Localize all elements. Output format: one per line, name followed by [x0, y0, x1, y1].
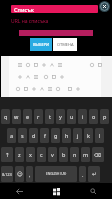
staticText: ВЫБЕРИ: [33, 42, 50, 47]
button[interactable]: ↑: [1, 147, 13, 162]
staticText: Списък: [14, 6, 34, 13]
staticText: c: [40, 151, 43, 158]
button[interactable]: tool: [31, 60, 40, 69]
button[interactable]: Search: [75, 183, 112, 199]
button[interactable]: b: [59, 147, 68, 162]
button[interactable]: tool: [39, 60, 48, 69]
button[interactable]: ☺: [15, 166, 24, 182]
button[interactable]: Close: [99, 1, 110, 12]
button[interactable]: k: [84, 128, 93, 143]
button[interactable]: q: [1, 109, 10, 124]
button[interactable]: o: [89, 109, 98, 124]
staticText: z: [18, 151, 21, 158]
staticText: ↵: [92, 171, 97, 177]
button[interactable]: ВЫБЕРИ: [30, 38, 52, 51]
button[interactable]: m: [81, 147, 90, 162]
staticText: ☺: [17, 171, 23, 177]
staticText: j: [77, 132, 79, 139]
staticText: d: [32, 132, 36, 139]
staticText: a: [10, 132, 14, 139]
staticText: s: [21, 132, 24, 139]
button[interactable]: s: [18, 128, 27, 143]
staticText: ↑: [5, 152, 10, 158]
button[interactable]: .: [79, 166, 86, 182]
button[interactable]: tool: [21, 84, 30, 93]
button[interactable]: r: [34, 109, 43, 124]
staticText: ,: [29, 171, 31, 178]
staticText: p: [103, 113, 107, 120]
button[interactable]: tool: [13, 84, 22, 93]
button[interactable]: n: [70, 147, 79, 162]
button[interactable]: tool: [15, 72, 24, 81]
staticText: l: [99, 132, 101, 139]
button[interactable]: tool: [23, 72, 32, 81]
button[interactable]: w: [12, 109, 21, 124]
button[interactable]: x: [26, 147, 35, 162]
staticText: o: [92, 113, 96, 120]
button[interactable]: h: [62, 128, 71, 143]
button[interactable]: tool: [73, 84, 82, 93]
staticText: ⌫: [94, 152, 102, 158]
button[interactable]: ОТМЕНА: [53, 38, 77, 51]
staticText: y: [59, 113, 62, 120]
button[interactable]: tool: [41, 72, 50, 81]
button[interactable]: tool: [47, 60, 56, 69]
button[interactable]: tool: [53, 84, 62, 93]
button[interactable]: tool: [31, 72, 40, 81]
button[interactable]: tool: [15, 60, 24, 69]
button[interactable]: tool: [45, 84, 54, 93]
staticText: i: [82, 113, 84, 120]
button[interactable]: tool: [57, 72, 66, 81]
button[interactable]: d: [29, 128, 38, 143]
button[interactable]: ENGLISH (US): [35, 166, 77, 182]
staticText: r: [37, 113, 40, 120]
staticText: URL на списъка: [11, 18, 49, 25]
staticText: m: [83, 151, 89, 158]
staticText: &123: [2, 172, 12, 177]
button[interactable]: Back: [0, 183, 38, 199]
staticText: n: [73, 151, 77, 158]
button[interactable]: z: [15, 147, 24, 162]
button[interactable]: f: [40, 128, 49, 143]
button[interactable]: ↵: [88, 166, 100, 182]
button[interactable]: v: [48, 147, 57, 162]
button[interactable]: g: [51, 128, 60, 143]
button[interactable]: j: [73, 128, 82, 143]
button[interactable]: c: [37, 147, 46, 162]
button[interactable]: tool: [37, 84, 46, 93]
staticText: x: [29, 151, 32, 158]
button[interactable]: tool: [29, 84, 38, 93]
button[interactable]: tool: [49, 72, 58, 81]
staticText: g: [54, 132, 58, 139]
staticText: h: [65, 132, 69, 139]
button[interactable]: a: [7, 128, 16, 143]
button[interactable]: tool: [55, 60, 64, 69]
button[interactable]: tool: [87, 60, 96, 69]
button[interactable]: tool: [23, 60, 32, 69]
button[interactable]: ,: [26, 166, 33, 182]
staticText: e: [26, 113, 30, 120]
staticText: w: [14, 113, 19, 120]
button[interactable]: y: [56, 109, 65, 124]
button[interactable]: tool: [65, 84, 74, 93]
button[interactable]: e: [23, 109, 32, 124]
staticText: t: [49, 113, 51, 120]
staticText: .: [82, 171, 84, 178]
button[interactable]: Home: [38, 183, 75, 199]
staticText: k: [87, 132, 90, 139]
button[interactable]: u: [67, 109, 76, 124]
button[interactable]: Списък: [11, 5, 98, 13]
staticText: b: [62, 151, 66, 158]
staticText: ОТМЕНА: [57, 42, 74, 47]
button[interactable]: i: [78, 109, 87, 124]
button[interactable]: tool: [95, 60, 104, 69]
button[interactable]: l: [95, 128, 104, 143]
button[interactable]: t: [45, 109, 54, 124]
staticText: ENGLISH (US): [46, 172, 67, 176]
staticText: f: [44, 132, 46, 139]
button[interactable]: ⌫: [92, 147, 104, 162]
staticText: v: [51, 151, 54, 158]
button[interactable]: p: [100, 109, 109, 124]
button[interactable]: &123: [1, 166, 13, 182]
